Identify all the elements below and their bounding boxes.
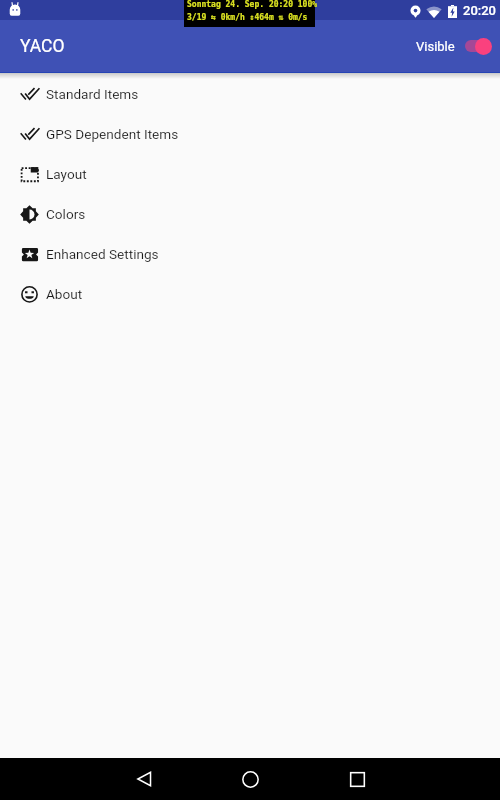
staticText: GPS Dependent Items	[46, 126, 179, 142]
staticText: 20:20	[463, 3, 497, 18]
button[interactable]: Enhanced Settings	[0, 234, 500, 274]
button[interactable]: Visible	[416, 37, 493, 55]
button[interactable]: Standard Items	[0, 74, 500, 114]
button[interactable]: Home	[228, 758, 272, 800]
button[interactable]: About	[0, 274, 500, 314]
staticText: Sonntag 24. Sep. 20:20 100%	[187, 0, 318, 9]
staticText: 3/19 ⇆ 0km/h ↕464m ⇅ 0m/s	[187, 13, 308, 22]
button[interactable]: Back	[123, 758, 167, 800]
staticText: Colors	[46, 206, 86, 222]
staticText: Visible	[416, 39, 455, 54]
staticText: Standard Items	[46, 86, 139, 102]
button[interactable]: Layout	[0, 154, 500, 194]
button[interactable]: GPS Dependent Items	[0, 114, 500, 154]
button[interactable]: Recents	[335, 758, 379, 800]
button[interactable]: Colors	[0, 194, 500, 234]
staticText: About	[46, 286, 83, 302]
staticText: YACO	[20, 36, 65, 57]
staticText: Layout	[46, 166, 87, 182]
staticText: Enhanced Settings	[46, 246, 159, 262]
